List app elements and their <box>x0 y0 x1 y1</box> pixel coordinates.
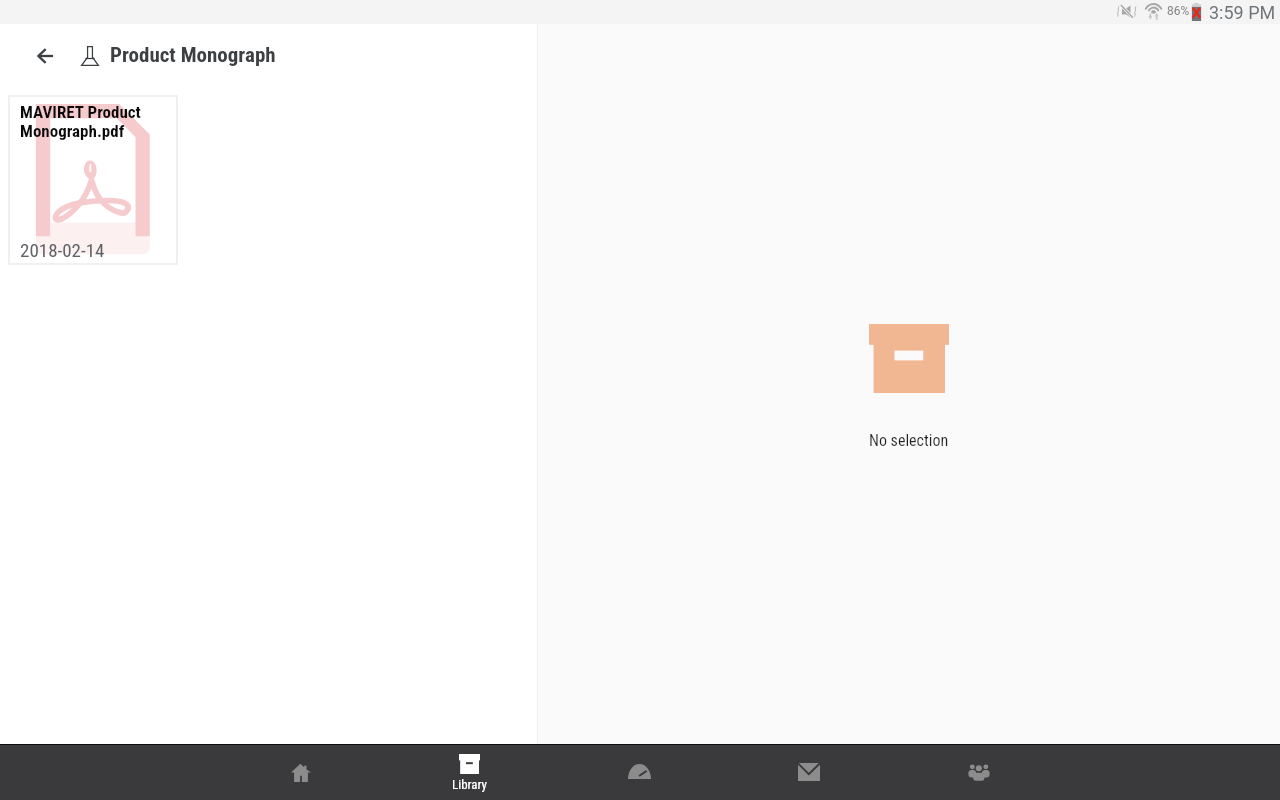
button[interactable]: MAVIRET Product Monograph.pdf <box>9 96 177 264</box>
button[interactable]: Mail <box>724 744 894 800</box>
button[interactable]: Stats <box>554 744 724 800</box>
staticText: Product Monograph <box>110 43 276 68</box>
staticText: 2018-02-14 <box>20 239 105 261</box>
button[interactable]: Contacts <box>894 744 1064 800</box>
staticText: Library <box>452 777 488 792</box>
staticText: MAVIRET Product Monograph.pdf <box>20 102 170 142</box>
staticText: No selection <box>869 431 949 450</box>
button[interactable]: Library <box>385 744 554 800</box>
button[interactable]: Back <box>28 38 60 74</box>
staticText: 3:59 PM <box>1209 2 1276 23</box>
button[interactable]: Home <box>216 744 385 800</box>
staticText: 86% <box>1167 4 1190 18</box>
